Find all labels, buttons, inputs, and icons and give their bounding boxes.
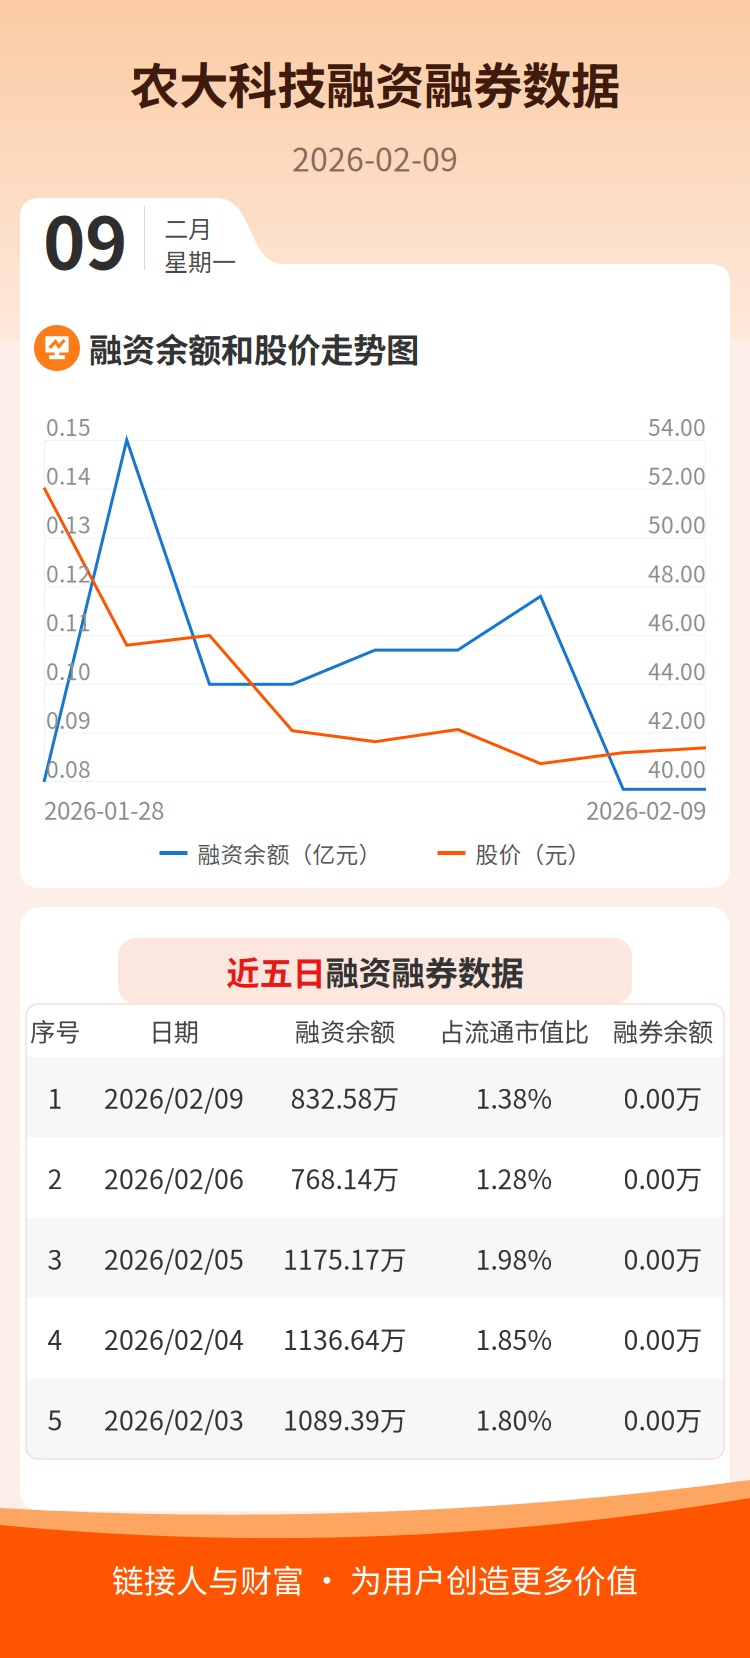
staticText: 1.85% [475, 1319, 552, 1358]
staticText: 5 [47, 1399, 62, 1438]
staticText: 48.00 [648, 556, 706, 589]
staticText: 0.00万 [623, 1319, 702, 1358]
staticText: 54.00 [648, 410, 706, 442]
staticText: 42.00 [648, 703, 706, 735]
staticText: 融资余额和股价走势图 [89, 324, 419, 372]
staticText: 农大科技融资融券数据 [130, 47, 620, 118]
staticText: 融券余额 [613, 1012, 713, 1049]
staticText: 832.58万 [290, 1078, 399, 1116]
staticText: 2026-02-09 [292, 134, 458, 181]
staticText: 1136.64万 [283, 1319, 407, 1358]
staticText: 1.80% [475, 1399, 552, 1438]
staticText: 2026/02/03 [104, 1399, 244, 1438]
staticText: 2026/02/09 [104, 1078, 244, 1116]
staticText: 融资余额（亿元） [197, 837, 381, 869]
staticText: 46.00 [648, 605, 706, 638]
staticText: 0.00万 [623, 1399, 702, 1438]
staticText: 二月 [164, 210, 212, 245]
staticText: 40.00 [648, 752, 706, 784]
staticText: 2026/02/05 [104, 1239, 244, 1277]
staticText: 日期 [149, 1012, 199, 1049]
staticText: 768.14万 [290, 1158, 399, 1197]
staticText: 52.00 [648, 458, 706, 491]
staticText: 4 [47, 1319, 62, 1358]
staticText: 1.98% [475, 1239, 552, 1277]
staticText: 1.38% [475, 1078, 552, 1116]
staticText: 0.15 [46, 410, 91, 442]
staticText: 链接人与财富 · 为用户创造更多价值 [112, 1556, 638, 1602]
staticText: 近五日 [226, 947, 325, 995]
staticText: 0.11 [46, 605, 91, 638]
staticText: 融资余额 [295, 1012, 395, 1049]
staticText: 1175.17万 [283, 1239, 407, 1277]
staticText: 1.28% [475, 1158, 552, 1197]
staticText: 0.10 [46, 654, 91, 687]
staticText: 09 [43, 186, 127, 290]
staticText: 2026-01-28 [44, 792, 164, 827]
staticText: 0.12 [46, 556, 91, 589]
staticText: 占流通市值比 [439, 1012, 589, 1049]
staticText: 44.00 [648, 654, 706, 687]
staticText: 星期一 [164, 243, 236, 278]
staticText: 2026-02-09 [586, 792, 706, 827]
staticText: 1 [47, 1078, 62, 1116]
staticText: 3 [47, 1239, 62, 1277]
staticText: 0.00万 [623, 1078, 702, 1116]
staticText: 1089.39万 [283, 1399, 407, 1438]
staticText: 0.13 [46, 507, 91, 540]
staticText: 2026/02/06 [104, 1158, 244, 1197]
staticText: 50.00 [648, 507, 706, 540]
staticText: 0.08 [46, 752, 91, 784]
staticText: 2 [47, 1158, 62, 1197]
staticText: 0.00万 [623, 1239, 702, 1277]
staticText: 0.00万 [623, 1158, 702, 1197]
staticText: 0.09 [46, 703, 91, 735]
staticText: 融资融券数据 [325, 947, 523, 995]
staticText: 0.14 [46, 458, 91, 491]
staticText: 2026/02/04 [104, 1319, 244, 1358]
staticText: 序号 [30, 1012, 80, 1049]
staticText: 股价（元） [475, 837, 590, 869]
